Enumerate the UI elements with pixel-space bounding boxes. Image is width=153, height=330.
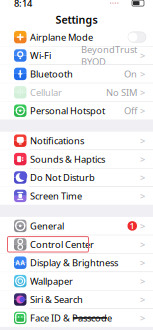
button[interactable]: Do Not Disturb [0, 168, 153, 186]
staticText: > [140, 68, 145, 80]
button[interactable]: Control Center [0, 235, 153, 253]
staticText: Wi-Fi [30, 49, 51, 62]
button[interactable]: Personal Hotspot [0, 102, 153, 120]
staticText: Screen Time [30, 190, 82, 202]
button[interactable]: Sounds & Haptics [0, 150, 153, 168]
staticText: > [140, 134, 145, 147]
staticText: Personal Hotspot [30, 104, 105, 117]
staticText: BeyondTrust BYOD [81, 43, 137, 68]
staticText: Do Not Disturb [30, 171, 95, 184]
button[interactable]: Screen Time [0, 187, 153, 205]
staticText: > [140, 256, 145, 269]
staticText: Sounds & Haptics [30, 153, 105, 165]
button[interactable]: Face ID & Passcode [0, 309, 153, 327]
button[interactable]: Notifications [0, 132, 153, 150]
staticText: On [124, 68, 137, 80]
staticText: Wallpaper [30, 275, 73, 287]
button[interactable]: Wallpaper [0, 272, 153, 290]
staticText: > [140, 220, 145, 232]
staticText: Bluetooth [30, 68, 73, 80]
staticText: Siri & Search [30, 293, 83, 306]
staticText: > [140, 312, 145, 324]
staticText: Face ID & Passcode [30, 312, 112, 324]
staticText: > [140, 104, 145, 117]
staticText: > [140, 171, 145, 184]
staticText: > [140, 293, 145, 306]
staticText: Airplane Mode [30, 31, 93, 43]
staticText: > [140, 190, 145, 202]
staticText: > [140, 86, 145, 98]
staticText: Notifications [30, 134, 84, 147]
staticText: Off [124, 104, 137, 117]
button[interactable]: Bluetooth [0, 65, 153, 83]
button[interactable]: Airplane Mode [0, 28, 153, 46]
button[interactable]: Wi-Fi [0, 46, 153, 64]
button[interactable]: General [0, 217, 153, 235]
staticText: 8:14 [14, 0, 32, 9]
staticText: AA [15, 258, 25, 267]
staticText: No SIM [106, 86, 137, 98]
staticText: Display & Brightness [30, 256, 118, 269]
staticText: 1 [130, 221, 135, 231]
staticText: Control Center [30, 238, 94, 250]
staticText: General [30, 220, 64, 232]
staticText: Settings [55, 12, 97, 27]
staticText: > [140, 153, 145, 165]
staticText: > [140, 275, 145, 287]
staticText: > [140, 49, 145, 62]
button[interactable]: AA [0, 254, 153, 272]
button[interactable]: Siri & Search [0, 290, 153, 308]
staticText: Cellular [30, 86, 62, 98]
button[interactable]: Cellular [0, 83, 153, 101]
staticText: > [140, 238, 145, 250]
